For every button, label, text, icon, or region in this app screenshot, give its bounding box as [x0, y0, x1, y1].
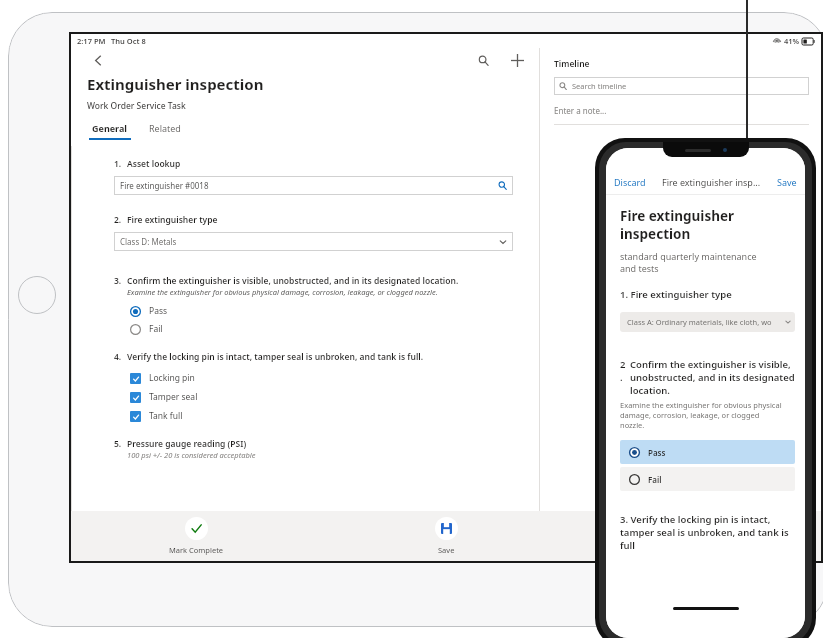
- staticText: 4.: [114, 351, 122, 363]
- staticText: Timeline: [554, 58, 590, 70]
- staticText: Confirm the extinguisher is visible,: [630, 358, 791, 371]
- staticText: Fire extinguisher type: [127, 214, 218, 226]
- staticText: 3.: [114, 275, 122, 287]
- staticText: Pass: [149, 305, 168, 317]
- staticText: 2:17 PM: [77, 36, 106, 46]
- staticText: 2 .: [620, 358, 626, 383]
- button[interactable]: Pass: [130, 305, 168, 317]
- staticText: Save: [777, 176, 797, 188]
- button[interactable]: General: [87, 122, 133, 140]
- staticText: Fire extinguisher: [620, 207, 735, 225]
- staticText: Fire extinguisher #0018: [120, 180, 209, 191]
- button[interactable]: Search timeline: [554, 77, 809, 95]
- staticText: Thu Oct 8: [111, 36, 146, 46]
- button[interactable]: Mark Complete: [71, 511, 321, 561]
- staticText: 100 psi +/- 20 is considered acceptable: [127, 450, 256, 460]
- button[interactable]: Related: [147, 122, 183, 140]
- staticText: 3. Verify the locking pin is intact,: [620, 513, 771, 526]
- staticText: Save: [438, 545, 455, 555]
- button[interactable]: Locking pin: [130, 372, 195, 384]
- staticText: Discard: [614, 176, 646, 188]
- button[interactable]: Tamper seal: [130, 391, 198, 403]
- staticText: Pressure gauge reading (PSI): [127, 438, 247, 450]
- button[interactable]: Class A: Ordinary materials, like cloth,…: [620, 312, 795, 332]
- staticText: Related: [149, 122, 181, 134]
- staticText: Search timeline: [572, 81, 627, 91]
- staticText: standard quarterly maintenance: [620, 250, 757, 262]
- staticText: Examine the extinguisher for obvious phy…: [620, 400, 782, 410]
- staticText: Asset lookup: [127, 158, 181, 170]
- staticText: Verify the locking pin is intact, tamper…: [127, 351, 424, 363]
- staticText: 2.: [114, 214, 122, 226]
- staticText: 41%: [784, 36, 800, 46]
- staticText: 5.: [114, 438, 122, 450]
- staticText: Mark Complete: [169, 545, 224, 555]
- staticText: damage, corrosion, leakage, or clogged: [620, 410, 760, 420]
- staticText: and tests: [620, 262, 659, 274]
- staticText: unobstructed, and in its designated: [630, 371, 795, 384]
- staticText: Work Order Service Task: [87, 100, 186, 112]
- staticText: 1. Fire extinguisher type: [620, 288, 732, 301]
- staticText: Pass: [648, 447, 666, 458]
- staticText: Tamper seal: [149, 391, 198, 403]
- staticText: Tank full: [149, 410, 183, 422]
- staticText: Extinguisher inspection: [87, 74, 264, 94]
- staticText: 1.: [114, 158, 122, 170]
- button[interactable]: Tank full: [130, 410, 183, 422]
- staticText: Get started: [657, 185, 707, 197]
- staticText: location.: [630, 384, 670, 397]
- staticText: full: [620, 539, 635, 552]
- staticText: Capture and manage activities: [624, 205, 739, 216]
- staticText: Confirm the extinguisher is visible, uno…: [127, 275, 459, 287]
- button[interactable]: Pass: [620, 440, 795, 464]
- button[interactable]: Back: [87, 49, 109, 71]
- staticText: inspection: [620, 225, 691, 243]
- staticText: Fire extinguisher insp...: [662, 176, 761, 188]
- button[interactable]: Save: [321, 511, 571, 561]
- staticText: Class D: Metals: [120, 236, 177, 247]
- staticText: Fail: [648, 474, 662, 485]
- button[interactable]: Search: [471, 48, 495, 72]
- staticText: Fail: [149, 323, 163, 335]
- staticText: General: [92, 122, 128, 134]
- staticText: tamper seal is unbroken, and tank is: [620, 526, 789, 539]
- button[interactable]: Fail: [620, 467, 795, 491]
- staticText: Locking pin: [149, 372, 195, 384]
- button[interactable]: Save: [777, 176, 797, 188]
- staticText: Examine the extinguisher for obvious phy…: [127, 287, 438, 297]
- button[interactable]: New: [505, 48, 529, 72]
- button[interactable]: Class D: Metals: [114, 232, 513, 251]
- staticText: Class A: Ordinary materials, like cloth,…: [627, 317, 772, 327]
- staticText: nozzle.: [620, 420, 645, 430]
- button[interactable]: Save & Close: [571, 511, 821, 561]
- button[interactable]: Fail: [130, 323, 163, 335]
- staticText: Enter a note...: [554, 105, 607, 116]
- button[interactable]: Fire extinguisher #0018: [114, 176, 513, 195]
- button[interactable]: Discard: [614, 176, 646, 188]
